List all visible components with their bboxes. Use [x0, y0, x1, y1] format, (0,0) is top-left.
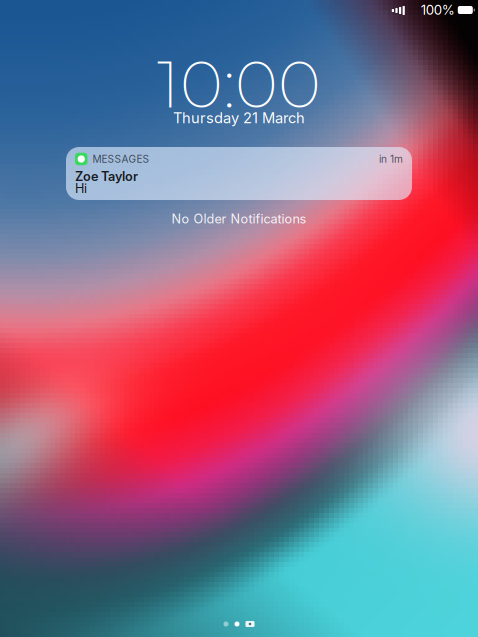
button[interactable]: MESSAGES: [66, 147, 412, 200]
staticText: Hi: [75, 181, 87, 196]
staticText: 100%: [421, 2, 455, 18]
staticText: in 1m: [379, 153, 403, 165]
staticText: Thursday 21 March: [173, 109, 305, 127]
staticText: Zoe Taylor: [75, 169, 138, 184]
staticText: MESSAGES: [92, 153, 149, 165]
staticText: No Older Notifications: [171, 211, 306, 227]
button[interactable]: Camera: [245, 620, 254, 627]
staticText: 10:00: [157, 44, 321, 124]
